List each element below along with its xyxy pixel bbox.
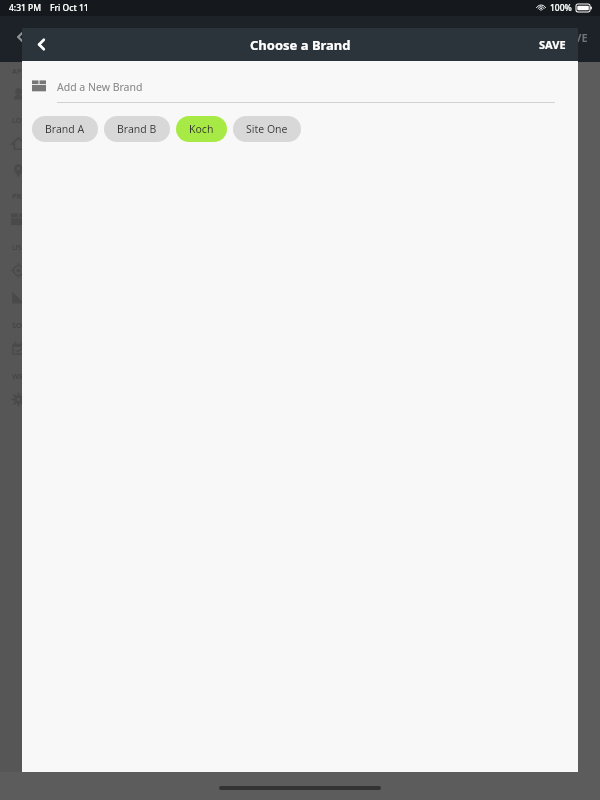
button[interactable]: Navigation item: [11, 85, 29, 103]
staticText: Brand B: [117, 122, 157, 136]
staticText: LOC: [12, 115, 27, 125]
staticText: SOU: [12, 320, 28, 330]
staticText: 4:31 PM: [9, 2, 42, 14]
button[interactable]: Navigation item: [11, 339, 29, 357]
staticText: API: [12, 66, 25, 76]
button[interactable]: Back: [22, 28, 62, 61]
staticText: SAVE: [561, 30, 588, 45]
button[interactable]: Koch: [176, 116, 227, 142]
staticText: 100%: [550, 2, 572, 14]
button[interactable]: SAVE: [527, 28, 578, 61]
button[interactable]: Brand B: [104, 116, 170, 142]
button[interactable]: SAVE: [549, 30, 600, 45]
staticText: Koch: [189, 122, 214, 136]
staticText: Site One: [246, 122, 288, 136]
button[interactable]: Navigation item: [11, 210, 29, 228]
button[interactable]: Navigation item: [11, 134, 29, 152]
button[interactable]: Back: [8, 24, 34, 50]
button[interactable]: Navigation item: [11, 390, 29, 408]
staticText: Choose a Brand: [250, 36, 351, 54]
staticText: PRE: [12, 191, 26, 201]
staticText: Brand A: [45, 122, 85, 136]
staticText: WEA: [12, 371, 29, 381]
staticText: SAVE: [539, 37, 566, 52]
button[interactable]: Navigation item: [11, 261, 29, 279]
staticText: Add a New Brand: [57, 80, 143, 94]
button[interactable]: Site One: [233, 116, 301, 142]
staticText: Fri Oct 11: [50, 2, 89, 14]
button[interactable]: Brand A: [32, 116, 98, 142]
button[interactable]: Navigation item: [11, 288, 29, 306]
staticText: USE: [12, 242, 26, 252]
button[interactable]: Navigation item: [11, 161, 29, 179]
